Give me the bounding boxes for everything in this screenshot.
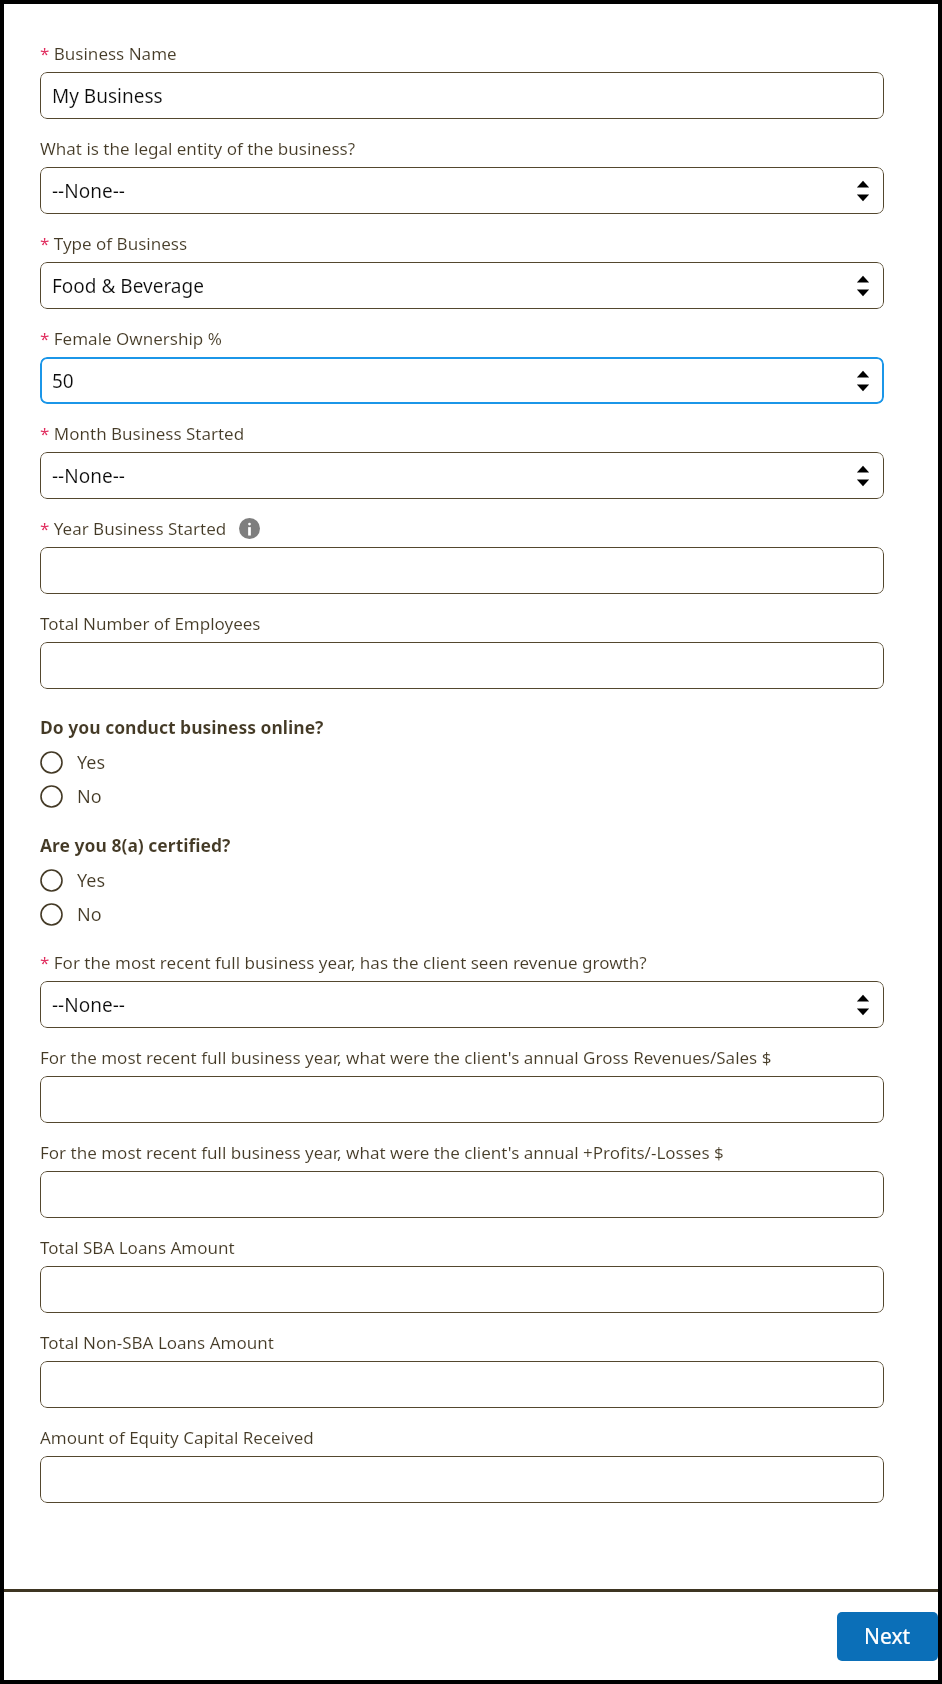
button[interactable]: What is the legal entity of the business… — [40, 167, 884, 214]
staticText: * For the most recent full business year… — [40, 951, 647, 974]
staticText: For the most recent full business year, … — [40, 1141, 724, 1164]
staticText: --None-- — [52, 463, 125, 489]
staticText: What is the legal entity of the business… — [40, 137, 356, 160]
button[interactable]: No — [40, 779, 102, 813]
staticText: My Business — [52, 83, 163, 109]
staticText: 50 — [52, 368, 74, 394]
button[interactable]: More information — [239, 518, 260, 539]
staticText: Next — [864, 1622, 911, 1651]
staticText: No — [77, 784, 102, 809]
staticText: Total SBA Loans Amount — [40, 1236, 235, 1259]
staticText: Total Number of Employees — [40, 612, 261, 635]
staticText: * Female Ownership % — [40, 327, 222, 350]
staticText: * Year Business Started — [40, 517, 227, 540]
button[interactable]: Total SBA Loans Amount — [40, 1266, 884, 1313]
button[interactable]: For the most recent full business year, … — [40, 1076, 884, 1123]
staticText: * Type of Business — [40, 232, 188, 255]
button[interactable]: Total Non-SBA Loans Amount — [40, 1361, 884, 1408]
staticText: Are you 8(a) certified? — [40, 833, 231, 857]
button[interactable]: Amount of Equity Capital Received — [40, 1456, 884, 1503]
button[interactable]: Yes — [40, 863, 106, 897]
button[interactable]: Yes — [40, 745, 106, 779]
staticText: Total Non-SBA Loans Amount — [40, 1331, 274, 1354]
button[interactable]: Business Name — [40, 72, 884, 119]
button[interactable]: Month Business Started — [40, 452, 884, 499]
button[interactable]: Total Number of Employees — [40, 642, 884, 689]
button[interactable]: Type of Business — [40, 262, 884, 309]
button[interactable]: No — [40, 897, 102, 931]
button[interactable]: For the most recent full business year, … — [40, 1171, 884, 1218]
button[interactable]: Next — [837, 1612, 938, 1661]
staticText: * Business Name — [40, 42, 177, 65]
staticText: --None-- — [52, 992, 125, 1018]
staticText: Yes — [77, 750, 106, 775]
button[interactable]: Female Ownership % — [40, 357, 884, 404]
staticText: For the most recent full business year, … — [40, 1046, 772, 1069]
button[interactable]: Year Business Started — [40, 547, 884, 594]
staticText: Amount of Equity Capital Received — [40, 1426, 314, 1449]
staticText: Food & Beverage — [52, 273, 204, 299]
staticText: Do you conduct business online? — [40, 715, 324, 739]
staticText: * Month Business Started — [40, 422, 245, 445]
staticText: Yes — [77, 868, 106, 893]
button[interactable]: For the most recent full business year, … — [40, 981, 884, 1028]
staticText: --None-- — [52, 178, 125, 204]
staticText: No — [77, 902, 102, 927]
